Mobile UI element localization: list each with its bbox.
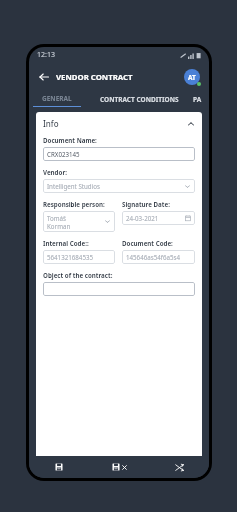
button[interactable]: GENERAL — [29, 91, 85, 107]
button[interactable]: Tomáš — [43, 211, 115, 232]
staticText: Intelligent Studios — [47, 182, 100, 190]
staticText: GENERAL — [42, 94, 72, 103]
button[interactable]: Info — [43, 118, 195, 129]
button[interactable]: Intelligent Studios — [43, 179, 195, 193]
staticText: Tomáš — [47, 214, 66, 222]
staticText: CONTRACT CONDITIONS — [100, 95, 179, 104]
button[interactable]: Back — [37, 70, 51, 84]
staticText: Internal Code:: — [43, 239, 89, 247]
button[interactable] — [43, 282, 195, 296]
button[interactable]: CRX023145 — [43, 147, 195, 161]
button[interactable]: CONTRACT CONDITIONS — [85, 91, 193, 107]
staticText: Document Name: — [43, 136, 97, 144]
staticText: 5641321684535 — [47, 253, 94, 261]
staticText: 24-03-2021 — [126, 214, 159, 222]
staticText: Responsible person: — [43, 200, 105, 208]
staticText: 145646as54f6a5s4 — [126, 253, 180, 261]
button[interactable]: Save and close — [89, 456, 149, 478]
staticText: Document Code: — [122, 239, 173, 247]
button[interactable]: 24-03-2021 — [122, 211, 195, 225]
staticText: Info — [43, 118, 59, 129]
staticText: Signature Date: — [122, 200, 170, 208]
staticText: VENDOR CONTRACT — [56, 72, 133, 83]
staticText: CRX023145 — [47, 150, 80, 158]
button[interactable]: Save — [29, 456, 89, 478]
staticText: Vendor: — [43, 168, 67, 176]
button[interactable]: PA — [193, 91, 209, 107]
button[interactable]: 145646as54f6a5s4 — [122, 250, 195, 264]
staticText: Object of the contract: — [43, 271, 113, 279]
staticText: PA — [193, 95, 202, 104]
staticText: 12:13 — [37, 50, 55, 60]
button[interactable]: 5641321684535 — [43, 250, 115, 264]
button[interactable]: Account — [183, 68, 201, 86]
button[interactable]: Transfer — [149, 456, 209, 478]
staticText: AT — [188, 73, 196, 82]
staticText: Korman — [47, 222, 71, 230]
